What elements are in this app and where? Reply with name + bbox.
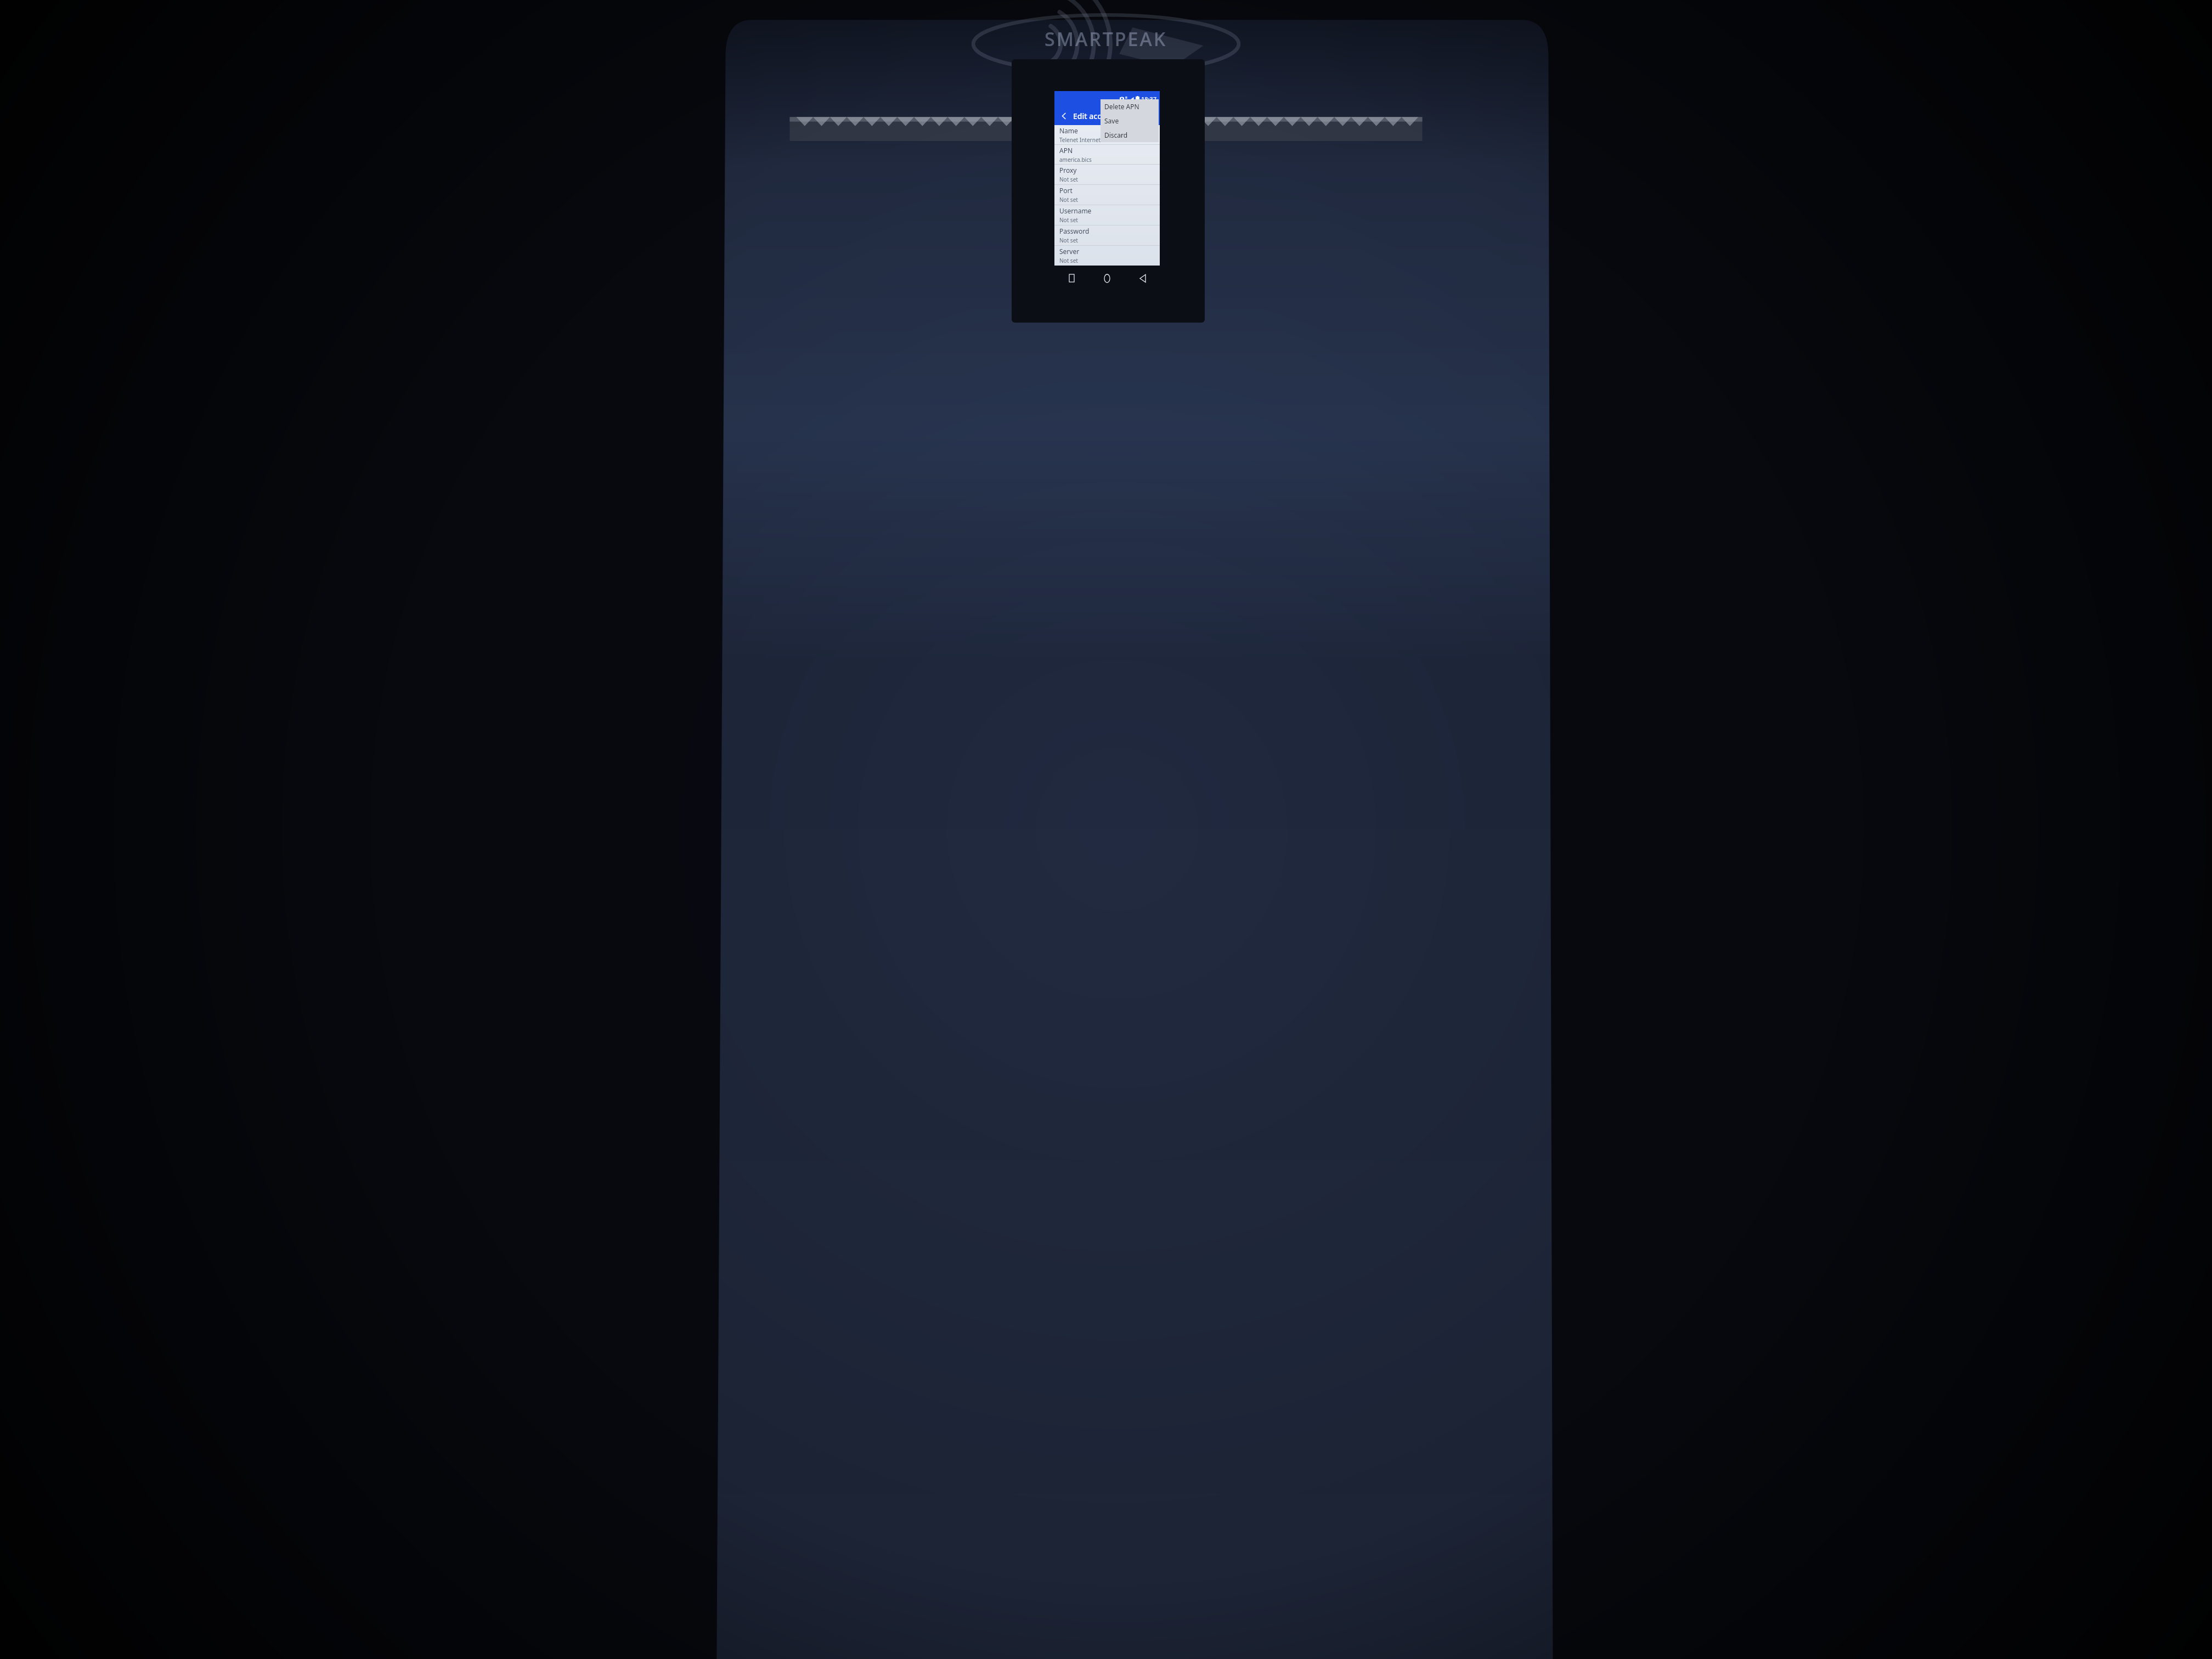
staticText: R — [1125, 95, 1127, 100]
button[interactable]: Recent apps — [1063, 270, 1080, 286]
staticText: Password — [1059, 227, 1090, 235]
staticText: Not set — [1059, 236, 1078, 244]
staticText: america.bics — [1059, 156, 1092, 163]
staticText: Proxy — [1059, 166, 1077, 174]
staticText: Edit access point — [1073, 111, 1135, 121]
staticText: 18:37 — [1141, 95, 1157, 103]
button[interactable]: Name — [1054, 125, 1160, 144]
button[interactable]: Password — [1054, 225, 1160, 245]
staticText: SMARTPEAK — [1045, 26, 1167, 52]
staticText: Username — [1059, 206, 1092, 215]
staticText: Discard — [1104, 131, 1128, 139]
staticText: APN — [1059, 146, 1073, 155]
button[interactable]: Navigate up — [1054, 106, 1073, 125]
staticText: Telenet Internet — [1059, 136, 1101, 144]
button[interactable]: Port — [1054, 185, 1160, 205]
button[interactable]: Save — [1101, 114, 1159, 128]
staticText: Not set — [1059, 216, 1078, 224]
staticText: Delete APN — [1104, 102, 1139, 111]
button[interactable]: Back — [1135, 270, 1151, 286]
staticText: Not set — [1059, 176, 1078, 183]
button[interactable]: Username — [1054, 205, 1160, 225]
button[interactable]: Home — [1099, 270, 1115, 286]
staticText: Not set — [1059, 257, 1078, 264]
button[interactable]: Server — [1054, 246, 1160, 266]
staticText: Save — [1104, 116, 1119, 125]
button[interactable]: APN — [1054, 145, 1160, 164]
staticText: Not set — [1059, 196, 1078, 204]
staticText: Server — [1059, 247, 1080, 256]
button[interactable]: Delete APN — [1101, 99, 1159, 114]
staticText: Name — [1059, 126, 1078, 135]
button[interactable]: Proxy — [1054, 165, 1160, 184]
button[interactable]: Discard — [1101, 128, 1159, 142]
staticText: Port — [1059, 186, 1073, 195]
